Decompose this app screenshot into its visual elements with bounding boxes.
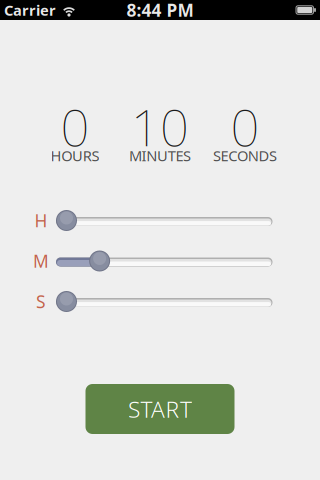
staticText: 8:44 PM [126, 0, 193, 21]
staticText: 0 [230, 93, 259, 160]
button[interactable]: H slider [56, 210, 272, 231]
staticText: M [33, 249, 49, 272]
button[interactable]: START [85, 384, 234, 434]
staticText: HOURS [51, 146, 99, 165]
staticText: MINUTES [129, 146, 191, 165]
staticText: 10 [131, 93, 189, 160]
staticText: Carrier [4, 0, 56, 20]
staticText: 0 [60, 93, 89, 160]
button[interactable]: S slider [56, 291, 272, 312]
staticText: START [128, 394, 192, 424]
staticText: H [34, 209, 47, 232]
staticText: S [36, 290, 46, 313]
staticText: SECONDS [213, 146, 277, 165]
button[interactable]: M slider [56, 250, 272, 271]
